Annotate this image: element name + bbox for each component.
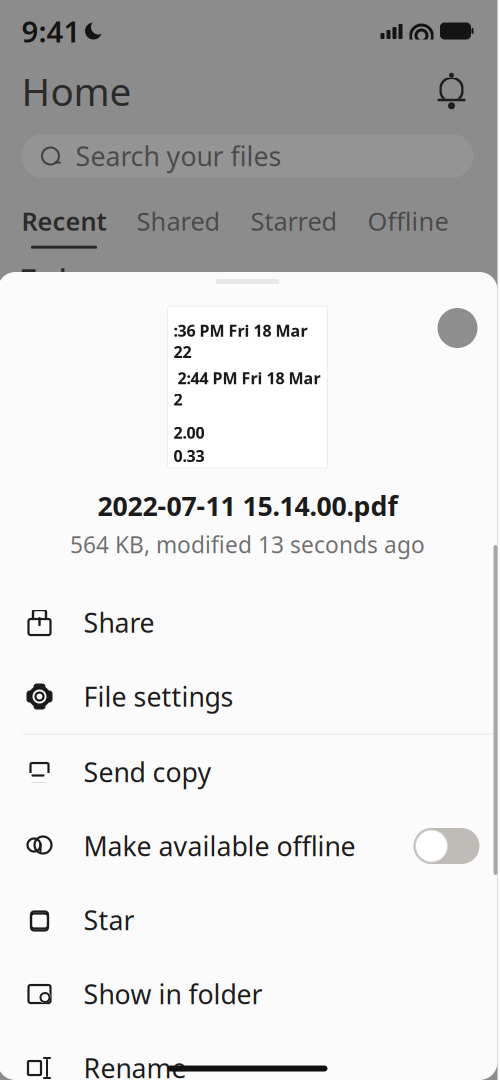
staticText: r 402267 bbox=[173, 478, 238, 500]
staticText: Share bbox=[83, 605, 154, 640]
button[interactable]: Show in folder bbox=[0, 957, 497, 1031]
staticText: Search your files bbox=[75, 138, 281, 174]
staticText: Starred bbox=[250, 204, 337, 238]
staticText: SERIAL NO: 1077 bbox=[221, 534, 319, 550]
staticText: Show in folder bbox=[83, 976, 262, 1012]
staticText: 564 KB, modified 13 seconds ago bbox=[70, 529, 425, 559]
staticText: File settings bbox=[83, 679, 233, 714]
staticText: 2.00 bbox=[173, 422, 204, 443]
staticText: Home bbox=[21, 65, 131, 117]
staticText: Offline bbox=[367, 204, 448, 238]
button[interactable]: Starred bbox=[250, 204, 367, 249]
button[interactable]: Rename bbox=[0, 1031, 497, 1080]
button[interactable]: Offline bbox=[367, 204, 478, 249]
button[interactable]: Account bbox=[437, 284, 497, 348]
button[interactable]: Recent bbox=[21, 204, 136, 249]
button[interactable]: Share bbox=[0, 585, 497, 659]
staticText: 0.33 bbox=[173, 445, 204, 466]
staticText: Star bbox=[83, 902, 134, 938]
button[interactable]: Notifications bbox=[429, 69, 473, 113]
staticText: FXI01 bbox=[173, 534, 207, 550]
staticText: Today bbox=[21, 261, 95, 294]
button[interactable]: Star bbox=[0, 883, 497, 957]
staticText: Recent bbox=[21, 204, 106, 238]
button[interactable]: Shared bbox=[136, 204, 250, 249]
staticText: Make available offline bbox=[83, 828, 355, 864]
button[interactable]: File settings bbox=[0, 659, 497, 733]
staticText: Send copy bbox=[83, 754, 211, 790]
staticText: Shared bbox=[136, 204, 220, 238]
button[interactable]: Send copy bbox=[0, 735, 497, 809]
button[interactable]: Make available offline bbox=[0, 809, 497, 883]
staticText: :36 PM Fri 18 Mar 22 bbox=[173, 320, 307, 362]
staticText: Rename bbox=[83, 1050, 186, 1080]
staticText: 9:41 bbox=[21, 11, 80, 50]
staticText: 009 11 bbox=[173, 514, 216, 531]
staticText: 2022-07-11 15.14.00.pdf bbox=[97, 488, 397, 523]
button[interactable]: Search your files bbox=[21, 134, 473, 178]
staticText: 2:44 PM Fri 18 Mar 2 bbox=[173, 367, 320, 410]
